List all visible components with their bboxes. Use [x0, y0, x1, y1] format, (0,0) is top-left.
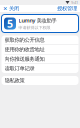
- button[interactable]: 隐私政策: [1, 76, 78, 85]
- staticText: 向你推送服务通知: [4, 56, 44, 62]
- staticText: 授权管理: [57, 5, 77, 12]
- button[interactable]: 读取订单记录: [1, 64, 78, 73]
- button[interactable]: 获取你的公开信息: [1, 35, 78, 45]
- button[interactable]: 授权管理: [54, 5, 80, 11]
- button[interactable]: 5: [1, 14, 78, 32]
- staticText: 5: [7, 16, 13, 31]
- staticText: 申请获得以下权限: [18, 25, 50, 30]
- staticText: 9:41: [71, 0, 78, 5]
- staticText: 隐私政策: [4, 77, 24, 84]
- button[interactable]: 向你推送服务通知: [1, 54, 78, 64]
- staticText: ✕ 关闭: [3, 5, 19, 12]
- staticText: 使用你的收货地址: [4, 46, 44, 53]
- button[interactable]: 使用你的收货地址: [1, 45, 78, 54]
- staticText: 读取订单记录: [4, 65, 34, 72]
- staticText: Lumny 美妆助手: [18, 17, 56, 24]
- staticText: 获取你的公开信息: [4, 37, 44, 43]
- button[interactable]: ✕ 关闭: [0, 5, 22, 11]
